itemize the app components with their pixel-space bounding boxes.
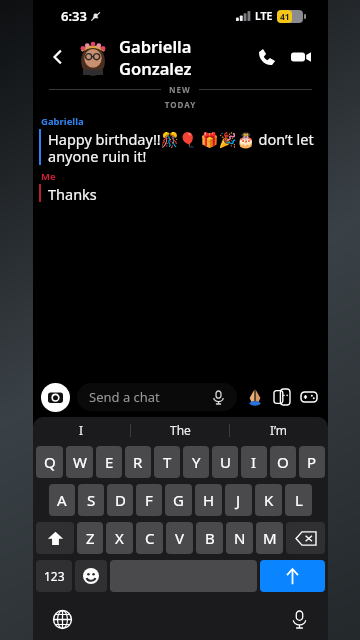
button[interactable]: U (212, 446, 238, 478)
button[interactable]: W (66, 446, 93, 478)
button[interactable]: Backspace (286, 522, 325, 554)
button[interactable]: S (78, 484, 104, 516)
staticText: R (133, 452, 143, 472)
staticText: LTE (255, 9, 273, 23)
button[interactable]: K (255, 484, 282, 516)
staticText: K (264, 490, 274, 510)
button[interactable]: Camera (41, 383, 70, 412)
button[interactable]: G (165, 484, 192, 516)
staticText: Z (86, 528, 95, 548)
staticText: O (277, 452, 289, 472)
button[interactable]: Send a Snap reaction (244, 386, 266, 408)
staticText: Gabriella (41, 115, 84, 128)
button[interactable]: 123 (36, 560, 72, 592)
staticText: A (57, 490, 67, 510)
button[interactable]: Games (298, 386, 320, 408)
button[interactable]: Me (33, 170, 328, 204)
button[interactable]: Back (43, 42, 73, 72)
staticText: B (205, 528, 215, 548)
staticText: V (175, 528, 185, 548)
button[interactable]: Change keyboard language (47, 604, 77, 634)
button[interactable]: Video call (284, 40, 318, 74)
staticText: 123 (44, 568, 65, 584)
button[interactable]: I (241, 446, 267, 478)
staticText: Me (41, 170, 56, 183)
button[interactable]: M (256, 522, 283, 554)
button[interactable]: J (225, 484, 252, 516)
button[interactable]: C (136, 522, 163, 554)
button[interactable]: X (106, 522, 133, 554)
button[interactable]: Stickers (271, 386, 293, 408)
staticText: F (145, 490, 153, 510)
button[interactable]: R (125, 446, 151, 478)
staticText: Send a chat (89, 388, 212, 406)
staticText: The (170, 422, 191, 438)
staticText: Happy birthday!!🎊🎈 🎁🎉🎂 don’t let anyone … (48, 129, 316, 166)
staticText: NEW (169, 84, 191, 95)
staticText: D (115, 490, 126, 510)
staticText: P (307, 452, 317, 472)
staticText: TODAY (33, 99, 328, 110)
button[interactable]: Z (77, 522, 103, 554)
staticText: X (115, 528, 124, 548)
button[interactable]: Shift (36, 522, 74, 554)
button[interactable]: L (285, 484, 312, 516)
button[interactable]: V (166, 522, 193, 554)
staticText: I (251, 452, 257, 472)
staticText: M (263, 528, 277, 548)
button[interactable]: Y (183, 446, 209, 478)
button[interactable]: D (107, 484, 133, 516)
staticText: 41 (280, 11, 290, 23)
staticText: Q (44, 452, 56, 472)
button[interactable]: I’m (230, 417, 328, 443)
button[interactable]: Gabriella (33, 115, 328, 166)
button[interactable]: I (33, 417, 130, 443)
button[interactable]: Voice input (284, 604, 314, 634)
staticText: C (145, 528, 155, 548)
button[interactable]: F (136, 484, 162, 516)
staticText: E (105, 452, 114, 472)
button[interactable]: B (196, 522, 223, 554)
staticText: N (234, 528, 246, 548)
staticText: J (236, 490, 241, 510)
button[interactable]: O (270, 446, 296, 478)
staticText: S (87, 490, 96, 510)
button[interactable]: A (49, 484, 75, 516)
staticText: 6:33 (61, 7, 87, 25)
staticText: I (79, 422, 84, 438)
button[interactable]: N (226, 522, 253, 554)
button[interactable]: The (131, 417, 229, 443)
button[interactable]: H (195, 484, 222, 516)
button[interactable]: Voice call (250, 40, 284, 74)
button[interactable]: Send a chat (77, 383, 237, 411)
button[interactable]: Q (36, 446, 63, 478)
staticText: Thanks (48, 184, 97, 204)
staticText: I’m (270, 422, 288, 438)
button[interactable]: Send (260, 560, 325, 592)
staticText: W (73, 452, 87, 472)
button[interactable]: Gabriella Gonzalez (119, 35, 250, 79)
staticText: H (203, 490, 215, 510)
button[interactable]: T (154, 446, 180, 478)
staticText: Y (192, 452, 201, 472)
staticText: U (220, 452, 231, 472)
staticText: G (173, 490, 184, 510)
button[interactable]: P (299, 446, 325, 478)
button[interactable]: E (96, 446, 122, 478)
button[interactable]: Emoji (75, 560, 107, 592)
staticText: T (163, 452, 172, 472)
staticText: L (295, 490, 303, 510)
